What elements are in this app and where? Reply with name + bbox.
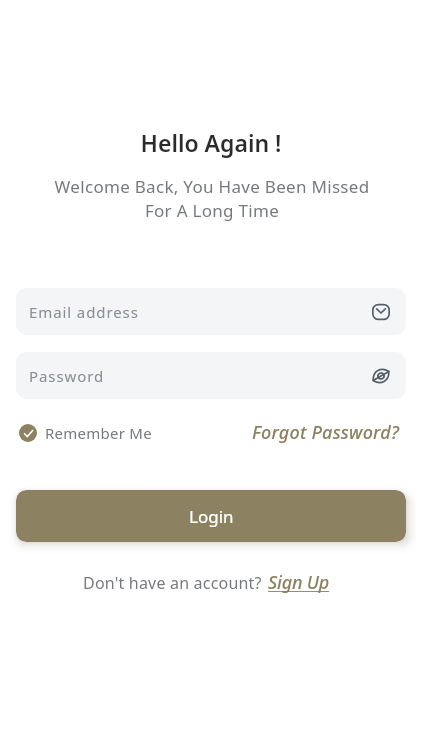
staticText: Hello Again ! <box>0 127 422 158</box>
staticText: Remember Me <box>45 423 152 443</box>
button[interactable]: Login <box>16 490 406 542</box>
button[interactable]: Show password <box>370 365 392 387</box>
button[interactable]: Email address <box>16 288 406 335</box>
button[interactable]: Password <box>16 352 406 399</box>
staticText: Don't have an account? <box>83 572 262 594</box>
button[interactable]: Email <box>370 301 392 323</box>
staticText: Email address <box>29 302 139 322</box>
button[interactable]: Remember Me <box>16 423 156 443</box>
button[interactable]: Sign Up <box>268 570 330 595</box>
button[interactable]: Forgot Password? <box>252 420 406 445</box>
staticText: Login <box>189 505 234 528</box>
staticText: Welcome Back, You Have Been Missed For A… <box>1 175 422 222</box>
staticText: Password <box>29 366 105 386</box>
